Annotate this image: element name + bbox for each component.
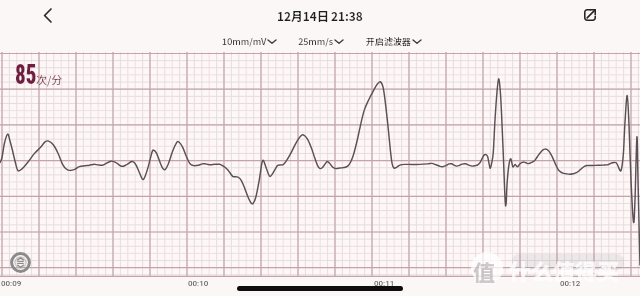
staticText: 00:09 xyxy=(1,279,22,288)
staticText: 开启滤波器 xyxy=(366,35,412,48)
button[interactable]: 25mm/s xyxy=(298,33,343,49)
button[interactable]: 10mm/mV xyxy=(222,33,276,49)
staticText: 00:10 xyxy=(188,279,209,288)
staticText: 85 xyxy=(15,59,37,91)
staticText: 00:12 xyxy=(560,279,581,288)
staticText: 值 xyxy=(473,255,496,287)
button[interactable]: Adjust gain xyxy=(10,252,31,273)
staticText: 25mm/s xyxy=(298,35,334,48)
staticText: 12月14日 21:38 xyxy=(277,7,363,24)
staticText: 10mm/mV xyxy=(222,35,267,48)
button[interactable]: Share xyxy=(577,2,603,28)
staticText: 什么值得买 xyxy=(509,254,620,286)
button[interactable]: 开启滤波器 xyxy=(366,33,421,49)
staticText: 次/分 xyxy=(36,71,63,87)
staticText: 00:11 xyxy=(374,279,395,288)
button[interactable]: Back xyxy=(34,2,60,28)
